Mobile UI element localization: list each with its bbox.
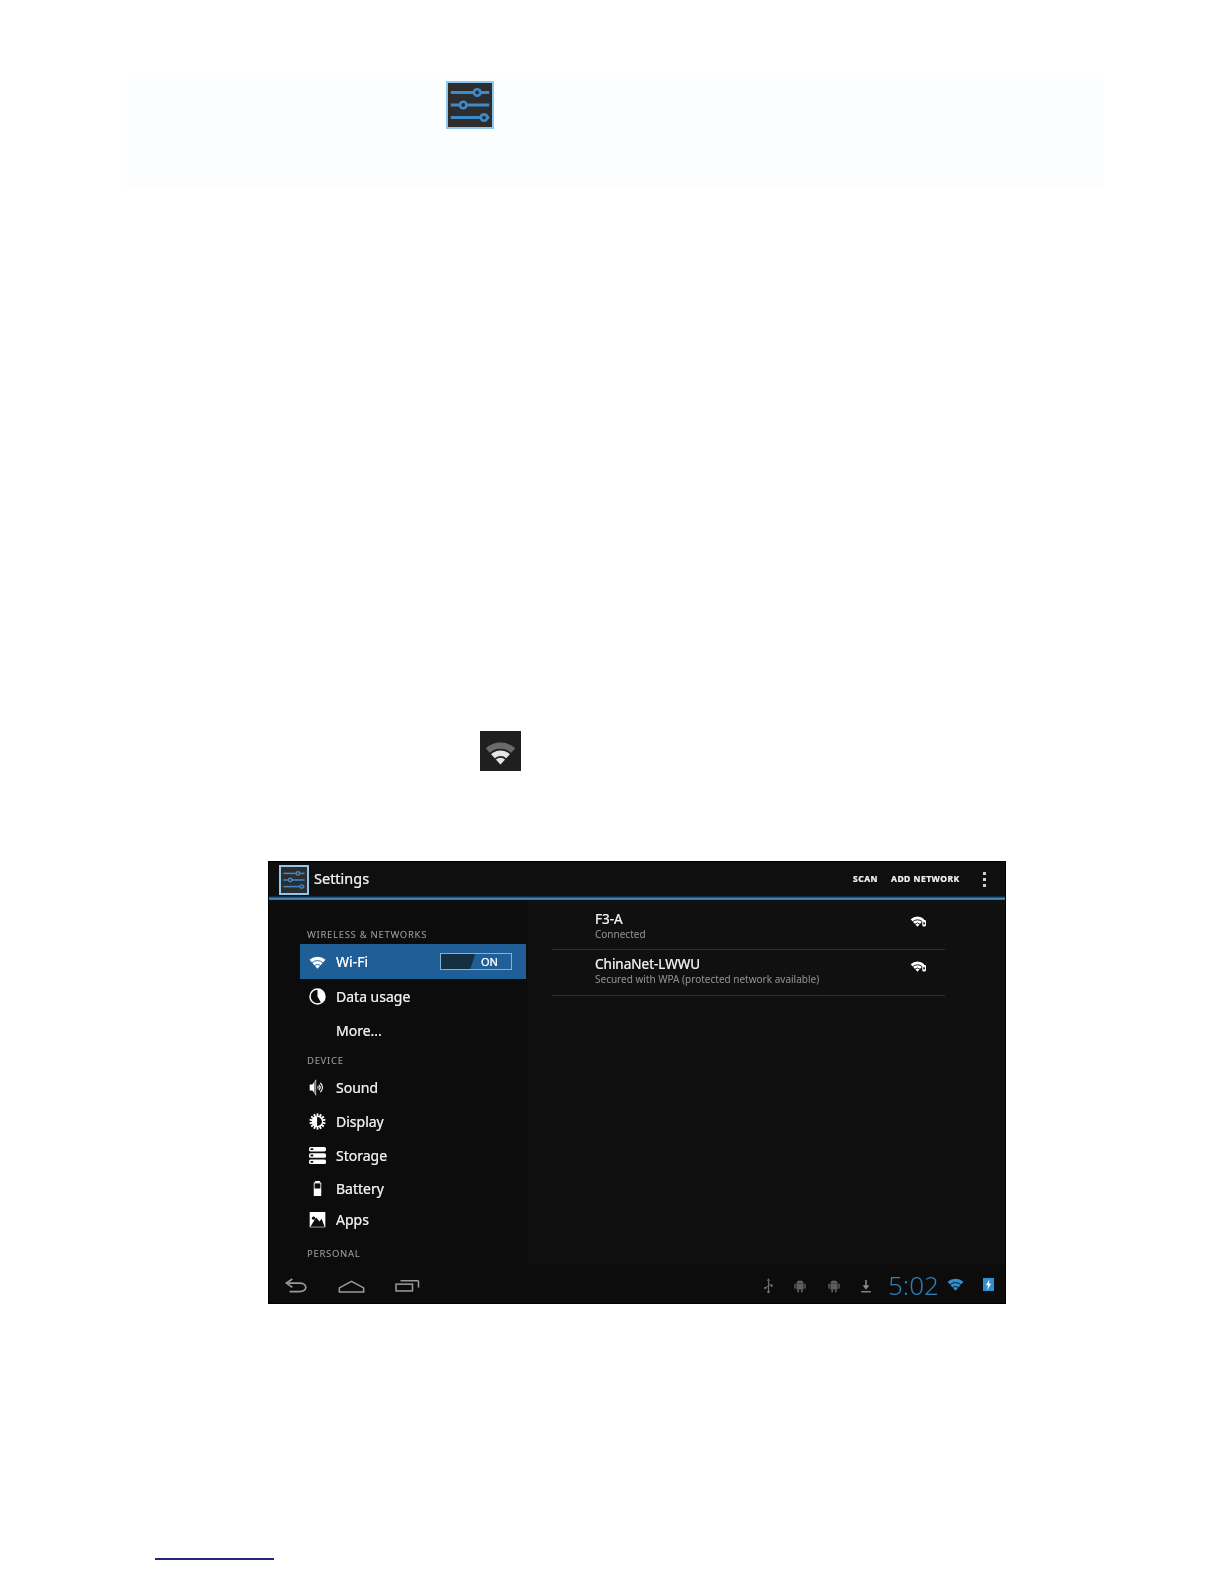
- staticText: Battery: [336, 1179, 384, 1198]
- button[interactable]: Display: [300, 1104, 526, 1138]
- staticText: Storage: [336, 1146, 388, 1165]
- button[interactable]: Storage: [300, 1138, 526, 1172]
- button[interactable]: F3-A: [531, 905, 1001, 949]
- button[interactable]: More options: [968, 861, 1000, 897]
- button[interactable]: Back: [282, 1274, 310, 1298]
- staticText: Wi-Fi: [336, 952, 369, 971]
- staticText: PERSONAL: [307, 1247, 361, 1260]
- staticText: Sound: [336, 1078, 379, 1097]
- staticText: ADD NETWORK: [891, 873, 960, 885]
- button[interactable]: SCAN: [847, 861, 883, 897]
- staticText: 5:02: [888, 1267, 939, 1302]
- staticText: Display: [336, 1112, 384, 1131]
- staticText: ON: [481, 954, 498, 969]
- button[interactable]: More...: [300, 1013, 526, 1047]
- staticText: DEVICE: [307, 1054, 344, 1067]
- staticText: Secured with WPA (protected network avai…: [595, 972, 820, 986]
- staticText: WIRELESS & NETWORKS: [307, 928, 428, 941]
- button[interactable]: Data usage: [300, 979, 526, 1013]
- staticText: Settings: [314, 868, 370, 888]
- staticText: Connected: [595, 927, 646, 941]
- staticText: SCAN: [853, 873, 878, 885]
- staticText: F3-A: [595, 910, 623, 928]
- button[interactable]: ADD NETWORK: [889, 861, 961, 897]
- button[interactable]: Settings: [274, 861, 384, 897]
- button[interactable]: Sound: [300, 1070, 526, 1104]
- button[interactable]: Battery: [300, 1171, 526, 1205]
- staticText: More...: [336, 1021, 382, 1040]
- button[interactable]: ChinaNet-LWWU: [531, 950, 1001, 995]
- staticText: Data usage: [336, 987, 411, 1006]
- button[interactable]: Apps: [300, 1202, 526, 1236]
- button[interactable]: ON: [440, 953, 512, 970]
- staticText: Apps: [336, 1210, 369, 1229]
- button[interactable]: Recents: [393, 1273, 421, 1297]
- staticText: ChinaNet-LWWU: [595, 955, 701, 973]
- button[interactable]: Wi-Fi: [300, 944, 526, 979]
- button[interactable]: Home: [337, 1274, 366, 1298]
